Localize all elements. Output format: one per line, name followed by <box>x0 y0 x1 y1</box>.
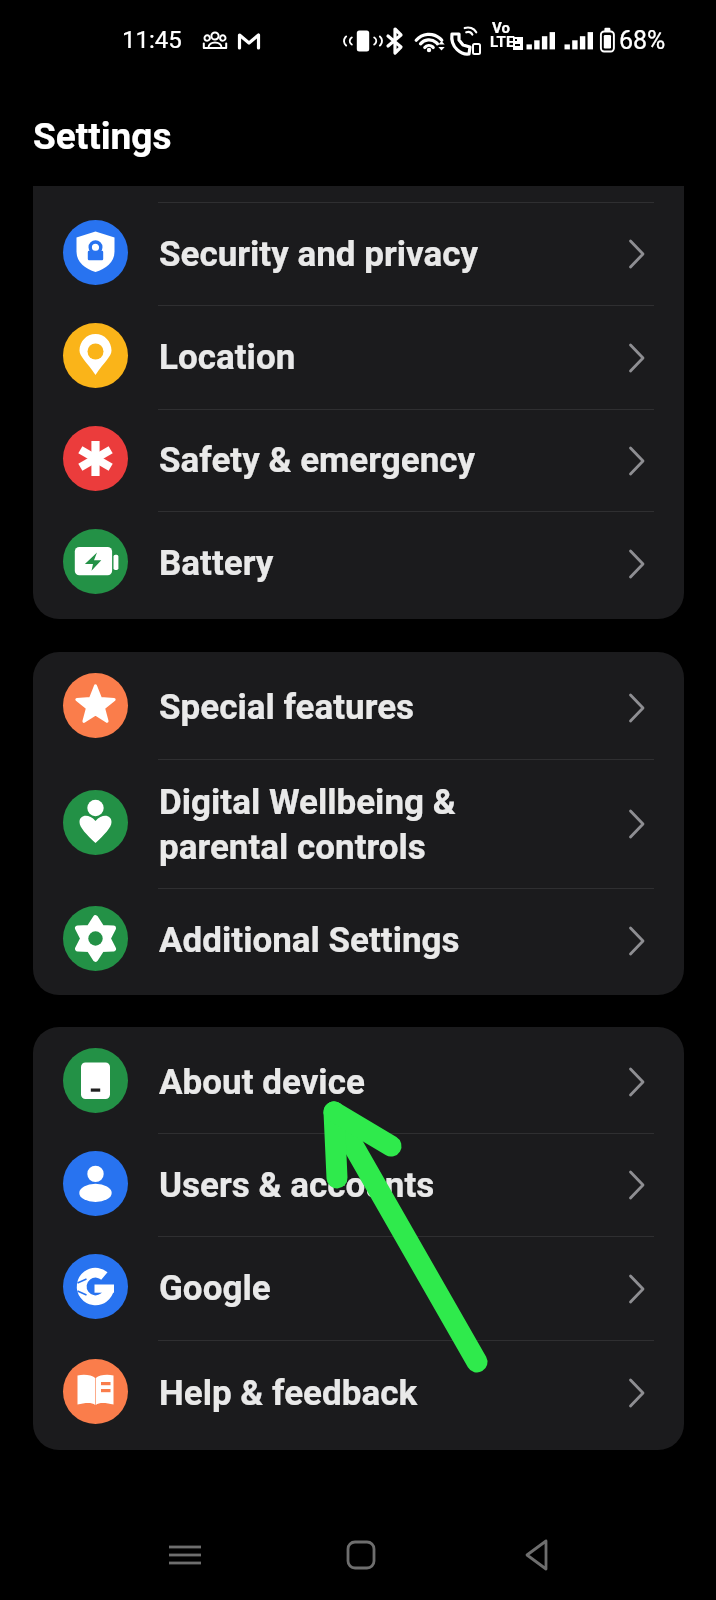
button[interactable]: Digital Wellbeing & parental controls <box>33 760 684 888</box>
staticText: 68% <box>619 26 666 55</box>
button[interactable]: About device <box>33 1031 684 1133</box>
button[interactable]: Additional Settings <box>33 889 684 992</box>
staticText: Users & accounts <box>159 1165 599 1206</box>
staticText: Settings <box>33 115 172 158</box>
button[interactable]: Security and privacy <box>33 203 684 305</box>
staticText: LTE <box>490 33 515 51</box>
staticText: Security and privacy <box>159 234 599 275</box>
staticText: Location <box>159 337 599 378</box>
button[interactable]: Special features <box>33 656 684 759</box>
staticText: 11:45 <box>122 26 182 54</box>
staticText: Digital Wellbeing & parental controls <box>159 782 599 867</box>
staticText: Google <box>159 1268 599 1309</box>
button[interactable]: Help & feedback <box>33 1341 684 1445</box>
staticText: Additional Settings <box>159 920 599 961</box>
staticText: Safety & emergency <box>159 440 599 481</box>
button[interactable]: Battery <box>33 512 684 615</box>
button[interactable]: Recent apps <box>159 1529 211 1581</box>
button[interactable]: Safety & emergency <box>33 410 684 511</box>
staticText: Help & feedback <box>159 1373 599 1414</box>
button[interactable]: Users & accounts <box>33 1134 684 1236</box>
button[interactable]: Back <box>512 1529 564 1581</box>
button[interactable]: Location <box>33 306 684 409</box>
button[interactable]: Home <box>335 1529 387 1581</box>
staticText: About device <box>159 1062 599 1103</box>
staticText: Special features <box>159 687 599 728</box>
staticText: Vo <box>492 19 510 37</box>
button[interactable]: Google <box>33 1237 684 1340</box>
staticText: Battery <box>159 543 599 584</box>
